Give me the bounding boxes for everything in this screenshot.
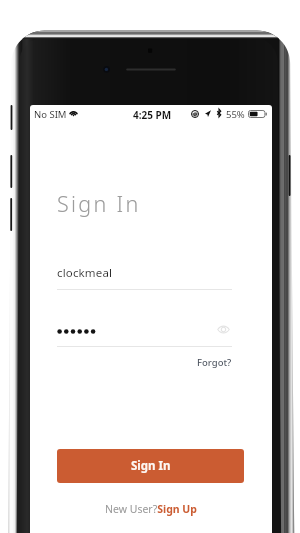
button[interactable]: clockmeal [57, 265, 232, 290]
staticText: No SIM [34, 108, 67, 121]
button[interactable]: Show password [217, 323, 230, 336]
staticText: New User?Sign Up [105, 502, 197, 516]
staticText: 4:25 PM [133, 108, 172, 122]
staticText: Sign In [131, 458, 171, 474]
button[interactable]: Show password [57, 321, 232, 338]
staticText: 55% [226, 108, 245, 121]
staticText: Forgot? [197, 356, 232, 369]
button[interactable]: Sign In [57, 449, 244, 483]
button[interactable]: Forgot? [197, 356, 232, 369]
staticText: Sign In [57, 189, 141, 218]
button[interactable]: New User?Sign Up [57, 499, 244, 519]
staticText: clockmeal [57, 265, 113, 281]
